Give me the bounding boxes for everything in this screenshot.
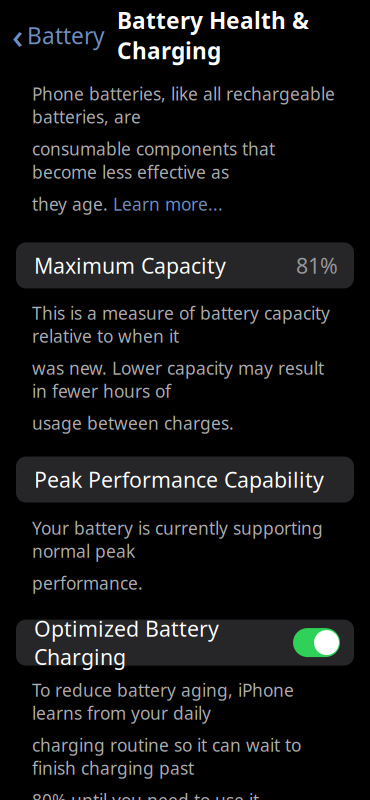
staticText: charging routine so it can wait to finis… <box>32 734 301 780</box>
staticText: ‹ <box>12 12 23 58</box>
staticText: was new. Lower capacity may result in fe… <box>32 356 324 402</box>
staticText: 81% <box>296 251 338 280</box>
staticText: This is a measure of battery capacity re… <box>32 301 330 347</box>
staticText: Phone batteries, like all rechargeable b… <box>32 82 335 128</box>
staticText: Battery <box>27 20 105 50</box>
button[interactable]: Peak Performance Capability <box>0 456 370 502</box>
staticText: 80% until you need to use it. <box>32 789 264 800</box>
button[interactable]: Maximum Capacity <box>0 242 370 288</box>
button[interactable]: Learn more... <box>113 192 223 215</box>
staticText: usage between charges. <box>32 411 234 434</box>
staticText: Optimized Battery Charging <box>34 614 219 671</box>
button[interactable]: Optimized Battery Charging <box>0 620 370 666</box>
staticText: performance. <box>32 572 143 595</box>
staticText: they age. <box>32 192 113 215</box>
staticText: Peak Performance Capability <box>34 465 324 494</box>
staticText: Learn more... <box>113 192 223 215</box>
staticText: consumable components that become less e… <box>32 137 275 183</box>
staticText: Battery Health & Charging <box>117 5 309 65</box>
button[interactable]: ‹ <box>0 16 111 54</box>
staticText: Your battery is currently supporting nor… <box>32 516 323 562</box>
staticText: To reduce battery aging, iPhone learns f… <box>32 679 294 725</box>
staticText: Maximum Capacity <box>34 251 226 280</box>
